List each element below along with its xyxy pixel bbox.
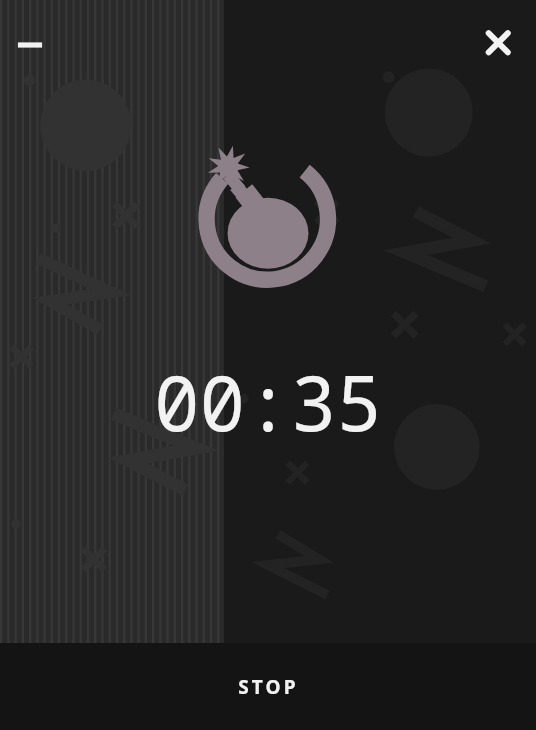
staticText: 00:35 (0, 350, 536, 454)
staticText: STOP (238, 674, 299, 700)
button[interactable]: Minimize (8, 14, 70, 76)
button[interactable]: Close (466, 13, 528, 75)
button[interactable]: STOP (0, 643, 536, 730)
